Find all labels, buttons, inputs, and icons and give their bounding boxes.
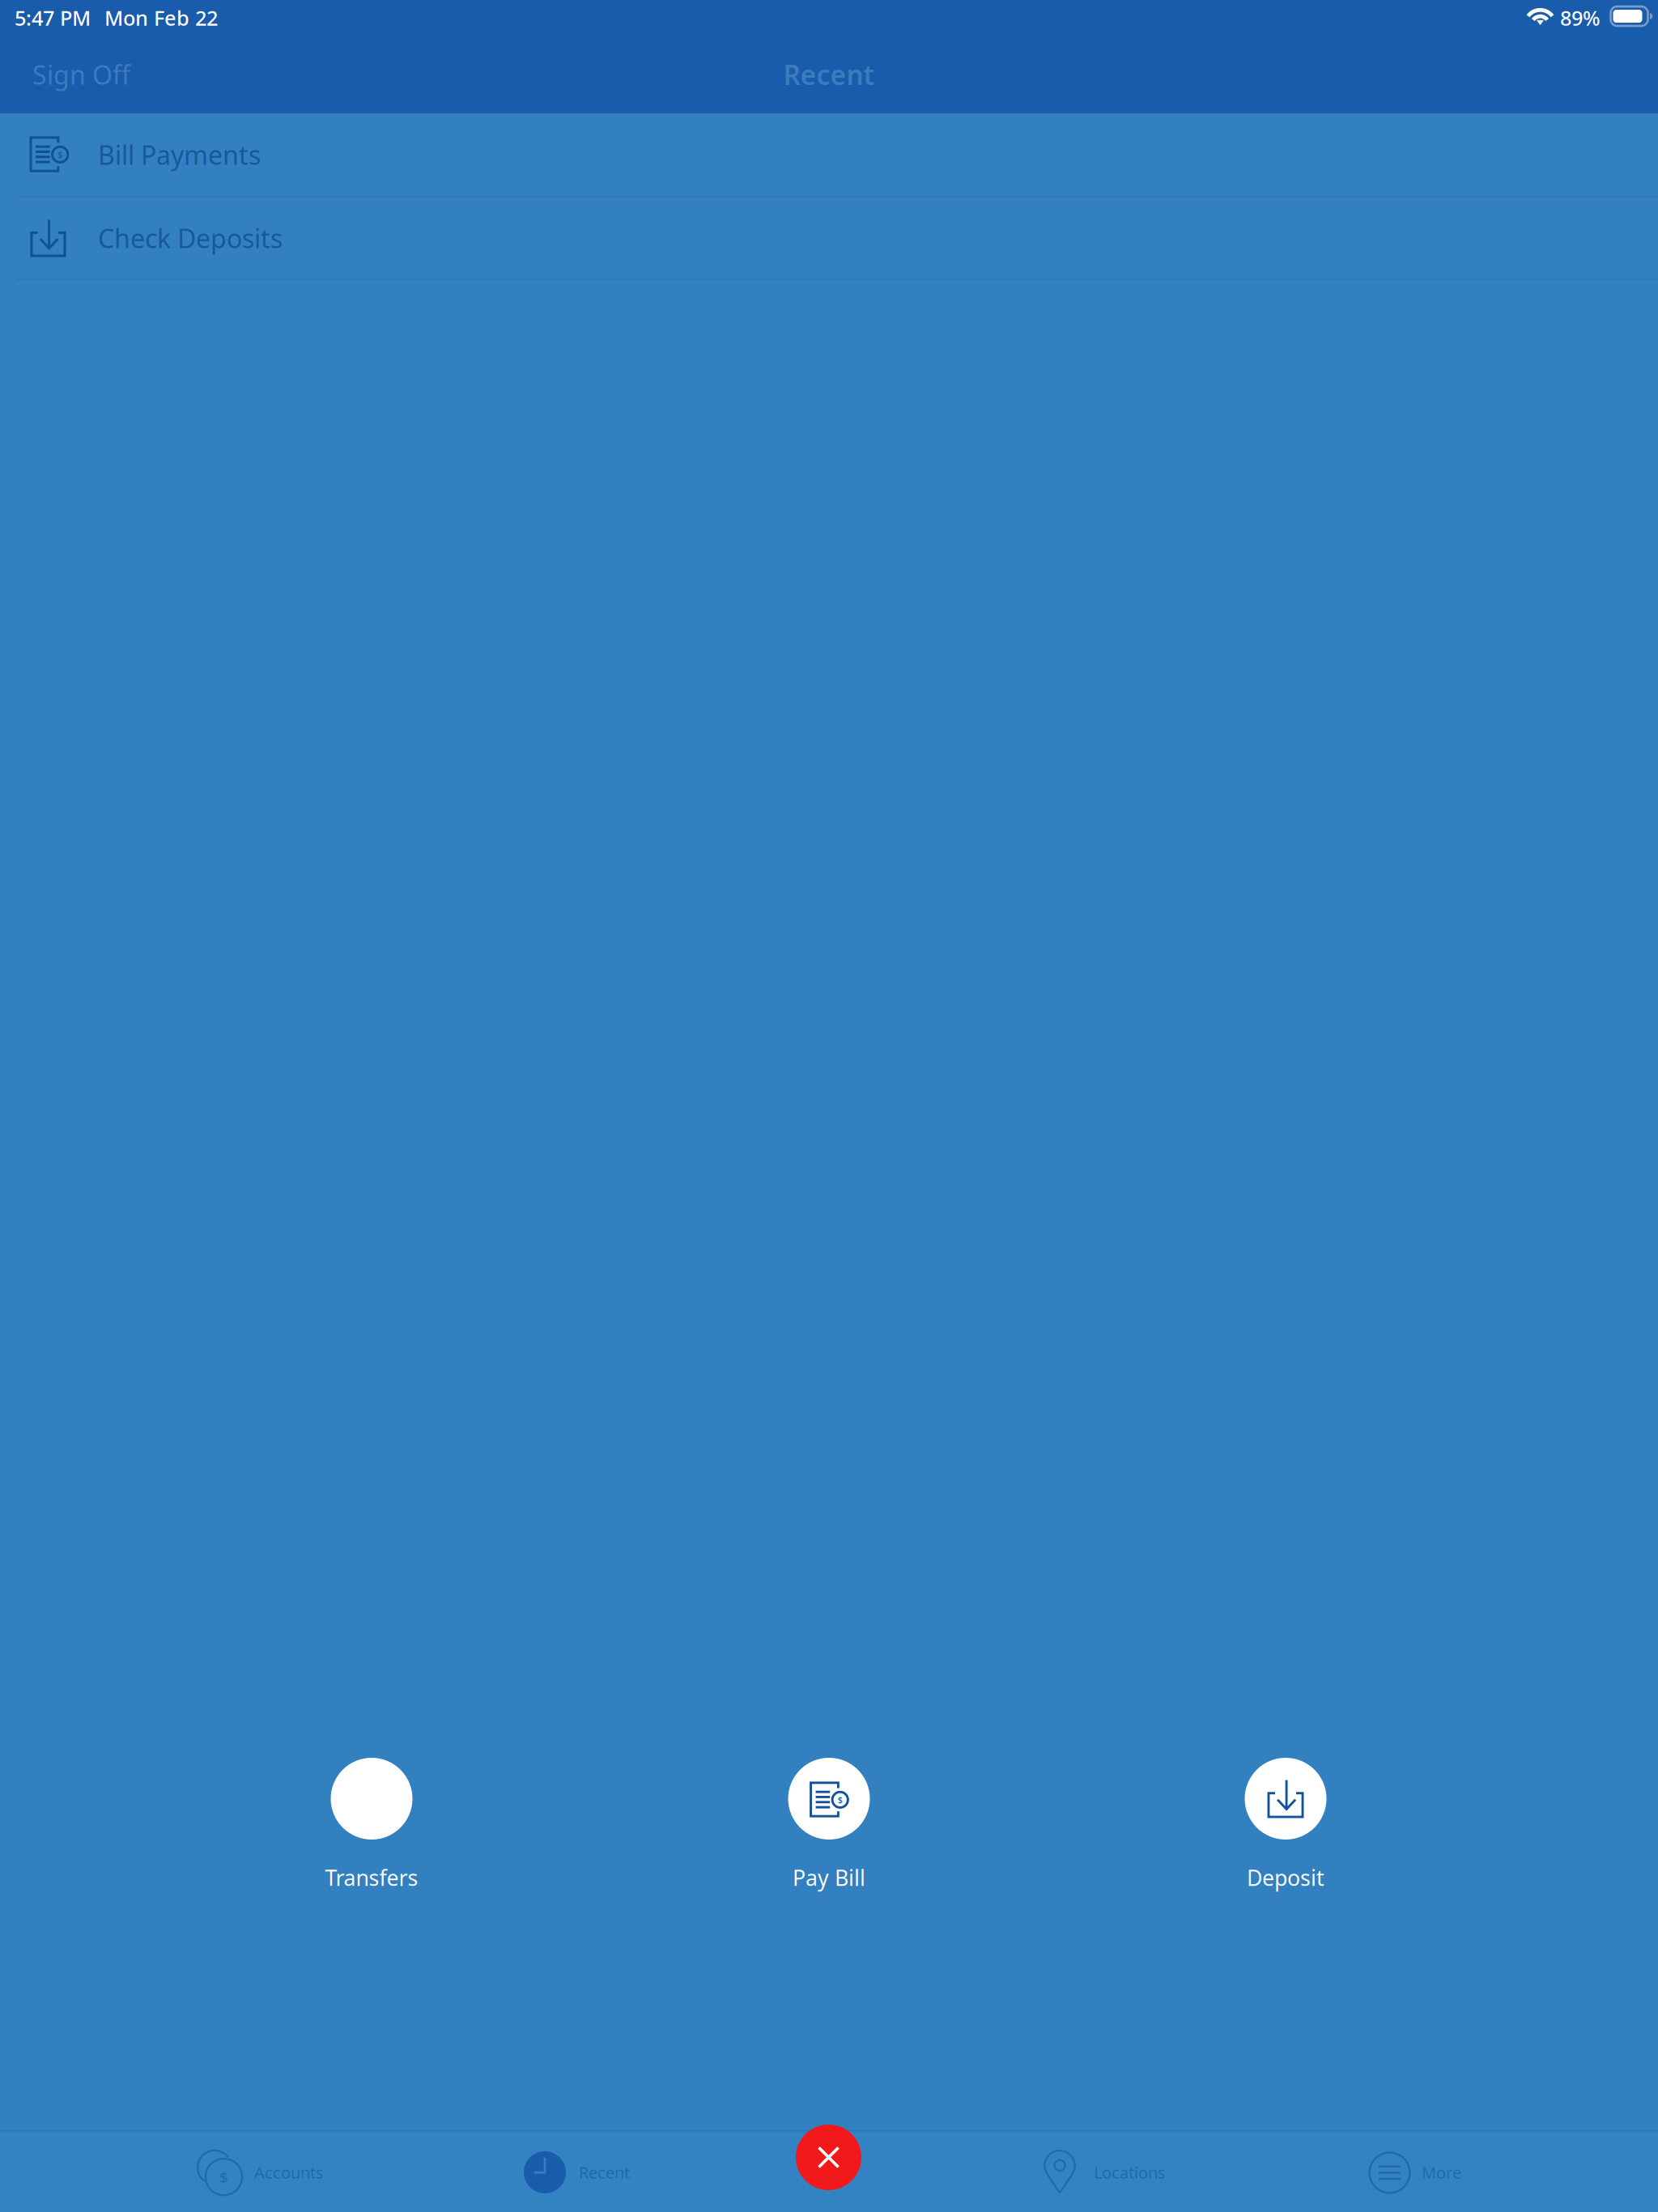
button[interactable]: Transfers [250, 1758, 493, 1899]
button[interactable]: $ [111, 2150, 443, 2212]
button[interactable]: $ [708, 1758, 950, 1899]
staticText: Pay Bill [793, 1863, 865, 1892]
button[interactable]: Deposit [1164, 1758, 1407, 1899]
button[interactable]: Close [796, 2125, 861, 2190]
button[interactable]: Check Deposits [0, 197, 1658, 279]
button[interactable]: Locations [884, 2150, 1216, 2212]
staticText: 89% [1560, 4, 1601, 31]
staticText: Accounts [254, 2162, 324, 2183]
button[interactable]: More [1216, 2150, 1548, 2212]
button[interactable]: Sign Off [32, 46, 178, 103]
staticText: $ [219, 2167, 228, 2187]
staticText: Deposit [1247, 1863, 1324, 1892]
staticText: Locations [1094, 2162, 1166, 2183]
staticText: $ [838, 1794, 843, 1806]
staticText: Recent [783, 57, 875, 92]
staticText: Transfers [325, 1863, 418, 1892]
staticText: Check Deposits [98, 221, 283, 255]
staticText: Sign Off [32, 57, 130, 92]
staticText: Bill Payments [98, 137, 261, 172]
staticText: More [1422, 2162, 1461, 2183]
staticText: $ [58, 149, 62, 160]
staticText: Mon Feb 22 [104, 4, 218, 31]
button[interactable]: $ [0, 113, 1658, 196]
staticText: 5:47 PM [15, 4, 91, 31]
staticText: Recent [579, 2162, 630, 2183]
button[interactable]: Recent [443, 2150, 775, 2212]
